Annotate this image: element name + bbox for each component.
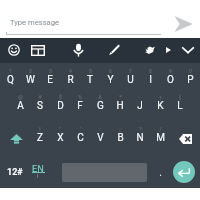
button[interactable]: 0 [180, 66, 200, 92]
staticText: R [67, 74, 74, 86]
button[interactable]: * [110, 92, 130, 118]
button[interactable]: : [90, 124, 110, 150]
staticText: ( [179, 94, 181, 100]
button[interactable]: Enter [173, 161, 195, 183]
staticText: O [167, 74, 174, 86]
staticText: % [78, 94, 82, 100]
staticText: / [159, 126, 162, 132]
staticText: $ [59, 94, 62, 100]
button[interactable]: Emoji [5, 40, 23, 60]
staticText: * [119, 94, 122, 100]
staticText: # [38, 94, 42, 100]
staticText: 5 [89, 68, 92, 74]
button[interactable]: Period [152, 160, 168, 184]
button[interactable]: 5 [80, 66, 100, 92]
staticText: 12# [7, 167, 23, 178]
button[interactable]: ? [130, 124, 150, 150]
staticText: M [156, 132, 165, 144]
staticText: V [97, 132, 104, 144]
button[interactable]: - [130, 92, 150, 118]
button[interactable]: & [90, 92, 110, 118]
staticText: ' [80, 126, 81, 132]
button[interactable]: Backspace [174, 128, 196, 150]
button[interactable]: @ [10, 92, 30, 118]
button[interactable]: ' [70, 124, 90, 150]
staticText: J [137, 100, 143, 112]
button[interactable]: ( [170, 92, 190, 118]
staticText: P [187, 74, 194, 86]
button[interactable]: Send [170, 12, 196, 36]
staticText: " [59, 126, 61, 132]
staticText: 3 [49, 68, 52, 74]
staticText: G [97, 100, 104, 112]
button[interactable]: " [50, 124, 70, 150]
button[interactable]: Shift [3, 126, 29, 150]
staticText: Z [37, 132, 43, 144]
button[interactable]: ; [110, 124, 130, 150]
staticText: 6 [109, 68, 112, 74]
staticText: @ [18, 94, 23, 100]
staticText: 1 [9, 68, 12, 74]
button[interactable]: Hide keyboard [179, 40, 197, 60]
button[interactable]: GIF [29, 40, 47, 60]
button[interactable]: / [150, 124, 170, 150]
button[interactable]: Twitter [141, 40, 159, 60]
button[interactable]: Handwriting [103, 40, 121, 60]
staticText: + [159, 94, 162, 100]
button[interactable]: 8 [140, 66, 160, 92]
staticText: S [37, 100, 43, 112]
staticText: A [17, 100, 24, 112]
staticText: X [57, 132, 64, 144]
staticText: 2 [29, 68, 32, 74]
staticText: T [87, 74, 93, 86]
staticText: 4 [69, 68, 72, 74]
staticText: 9 [169, 68, 172, 74]
staticText: Q [7, 74, 14, 86]
staticText: I [149, 74, 152, 86]
staticText: U [127, 74, 134, 86]
staticText: 0 [189, 68, 192, 74]
staticText: E [47, 74, 53, 86]
button[interactable]: 7 [120, 66, 140, 92]
button[interactable]: % [70, 92, 90, 118]
button[interactable]: 2 [20, 66, 40, 92]
staticText: - [139, 94, 141, 100]
staticText: C [77, 132, 84, 144]
staticText: F [77, 100, 83, 112]
staticText: ? [139, 126, 142, 132]
button[interactable]: ! [30, 124, 50, 150]
button[interactable]: More [162, 44, 174, 56]
staticText: B [117, 132, 124, 144]
staticText: 8 [149, 68, 152, 74]
button[interactable]: 3 [40, 66, 60, 92]
staticText: 7 [129, 68, 132, 74]
staticText: L [177, 100, 183, 112]
staticText: Type message [10, 18, 59, 27]
staticText: K [157, 100, 164, 112]
button[interactable]: # [30, 92, 50, 118]
button[interactable]: Symbols [2, 160, 28, 184]
button[interactable]: Voice input [69, 40, 87, 60]
staticText: . [159, 167, 162, 179]
staticText: W [26, 74, 35, 86]
button[interactable]: 9 [160, 66, 180, 92]
staticText: Y [107, 74, 114, 86]
staticText: EN [32, 163, 44, 174]
button[interactable]: + [150, 92, 170, 118]
button[interactable]: Language [27, 160, 51, 184]
staticText: H [116, 100, 124, 112]
staticText: & [98, 94, 102, 100]
staticText: : [99, 126, 101, 132]
staticText: D [57, 100, 64, 112]
staticText: N [136, 132, 144, 144]
staticText: ! [39, 126, 41, 132]
button[interactable]: 6 [100, 66, 120, 92]
button[interactable]: 1 [0, 66, 20, 92]
button[interactable]: 4 [60, 66, 80, 92]
staticText: ; [119, 126, 121, 132]
button[interactable]: $ [50, 92, 70, 118]
